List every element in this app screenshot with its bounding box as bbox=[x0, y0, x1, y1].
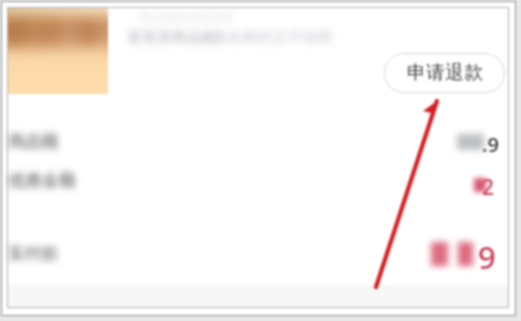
button[interactable]: 优惠金额 bbox=[8, 160, 500, 206]
staticText: 商品额 bbox=[8, 131, 59, 152]
staticText: 某某某商品标 bbox=[127, 28, 217, 47]
staticText: 申请退款 bbox=[407, 61, 483, 85]
staticText: 实付款 bbox=[8, 243, 59, 264]
button[interactable]: 申请退款 bbox=[384, 53, 505, 93]
staticText: 题名称的文字说明 bbox=[212, 28, 332, 47]
button[interactable]: 商品额 bbox=[8, 113, 500, 169]
staticText: 2 bbox=[482, 173, 495, 202]
staticText: 优惠金额 bbox=[8, 170, 76, 191]
staticText: 9 bbox=[478, 236, 496, 278]
button[interactable]: Product photo bbox=[8, 8, 108, 94]
staticText: .9 bbox=[482, 131, 499, 158]
button[interactable]: 实付款 bbox=[8, 226, 500, 282]
